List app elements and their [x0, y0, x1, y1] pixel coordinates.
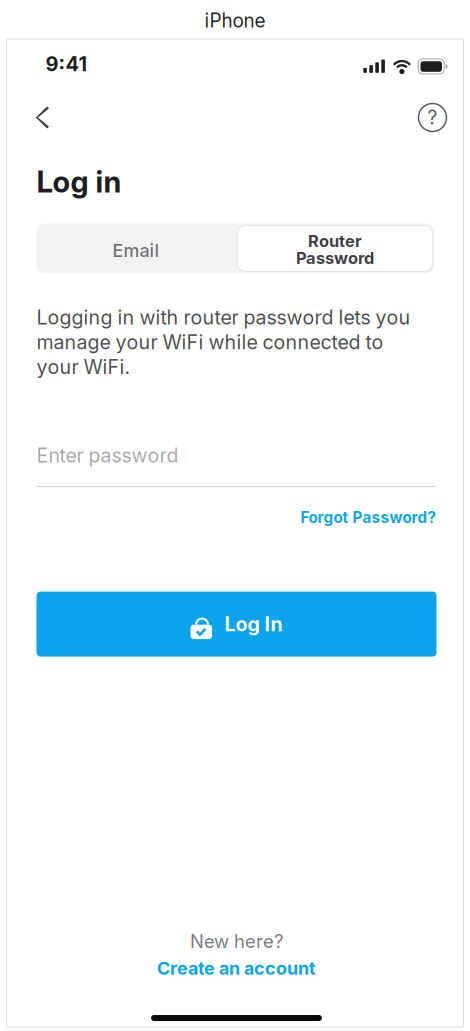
staticText: 9:41: [45, 52, 87, 76]
staticText: Log in: [36, 164, 121, 199]
staticText: ?: [427, 106, 437, 129]
button[interactable]: Email: [36, 223, 235, 273]
staticText: Log In: [224, 612, 282, 636]
staticText: Forgot Password?: [300, 508, 436, 527]
button[interactable]: Router: [235, 223, 434, 273]
staticText: Email: [112, 240, 159, 261]
button[interactable]: Forgot Password?: [36, 487, 436, 529]
staticText: Create an account: [157, 957, 316, 979]
button[interactable]: Back: [34, 96, 74, 138]
button[interactable]: Log In: [36, 592, 436, 657]
staticText: Enter password: [36, 444, 178, 467]
button[interactable]: Create an account: [157, 957, 316, 979]
staticText: Password: [296, 248, 374, 268]
staticText: Logging in with router password lets you…: [36, 305, 410, 379]
staticText: iPhone: [204, 9, 265, 32]
staticText: New here?: [190, 930, 283, 952]
button[interactable]: Help: [406, 96, 446, 138]
staticText: Router: [308, 231, 362, 251]
